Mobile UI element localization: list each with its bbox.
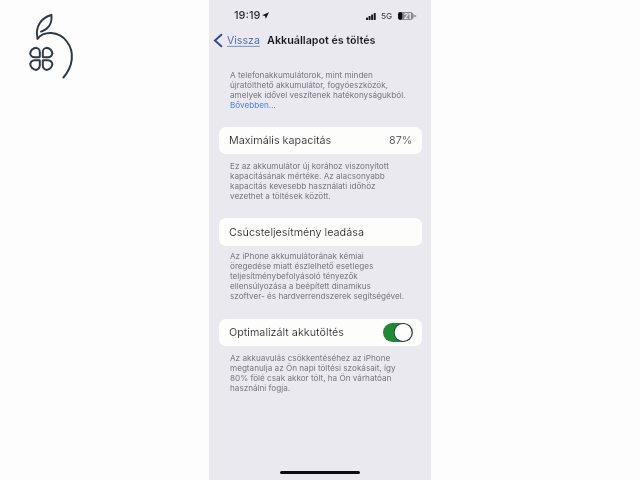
staticText: A telefonakkumulátorok, mint minden bbox=[230, 70, 373, 80]
staticText: újratölthető akkumulátor, fogyóeszközök, bbox=[230, 80, 389, 90]
staticText: Az iPhone akkumulátorának kémiai bbox=[230, 251, 364, 261]
staticText: 5G bbox=[381, 11, 393, 21]
other: Apple command logo bbox=[25, 12, 95, 82]
staticText: amelyek idővel veszítenek hatékonyságukb… bbox=[230, 90, 406, 100]
staticText: Az akkuavulás csökkentéséhez az iPhone bbox=[230, 353, 391, 363]
button[interactable]: Optimalizált akkutöltés bbox=[219, 319, 422, 346]
button[interactable]: Bővebben… bbox=[230, 100, 276, 110]
staticText: Akkuállapot és töltés bbox=[267, 34, 376, 47]
button[interactable]: Optimalizált akkutöltés kapcsoló bbox=[383, 323, 413, 342]
staticText: 19:19 bbox=[234, 9, 261, 22]
staticText: teljesítménybefolyásoló tényezők bbox=[230, 271, 358, 281]
staticText: kapacitásának mértéke. Az alacsonyabb bbox=[230, 171, 385, 181]
staticText: Maximális kapacitás bbox=[229, 134, 332, 147]
staticText: vezethet a töltések között. bbox=[230, 191, 331, 201]
staticText: használni fogja. bbox=[230, 383, 291, 393]
staticText: Optimalizált akkutöltés bbox=[229, 326, 345, 339]
other: Vissza bbox=[214, 34, 222, 47]
staticText: 80% fölé csak akkor tölt, ha Ön várhatóa… bbox=[230, 373, 392, 383]
staticText: Bővebben… bbox=[230, 100, 276, 110]
staticText: kapacitás kevesebb használati időhöz bbox=[230, 181, 376, 191]
staticText: öregedése miatt észlelhető esetleges bbox=[230, 261, 374, 271]
staticText: Csúcsteljesítmény leadása bbox=[229, 226, 364, 239]
staticText: ellensúlyozása a beépített dinamikus bbox=[230, 281, 371, 291]
staticText: Ez az akkumulátor új korához viszonyítot… bbox=[230, 161, 389, 171]
button[interactable]: Csúcsteljesítmény leadása bbox=[219, 218, 422, 246]
staticText: 21 bbox=[404, 12, 412, 20]
staticText: 87% bbox=[389, 134, 413, 147]
button[interactable]: Maximális kapacitás bbox=[219, 127, 422, 154]
staticText: szoftver- és hardverrendszerek segítségé… bbox=[230, 291, 405, 301]
button[interactable]: Vissza bbox=[212, 34, 262, 47]
staticText: megtanulja az Ön napi töltési szokásait,… bbox=[230, 363, 396, 373]
staticText: Vissza bbox=[227, 34, 260, 47]
